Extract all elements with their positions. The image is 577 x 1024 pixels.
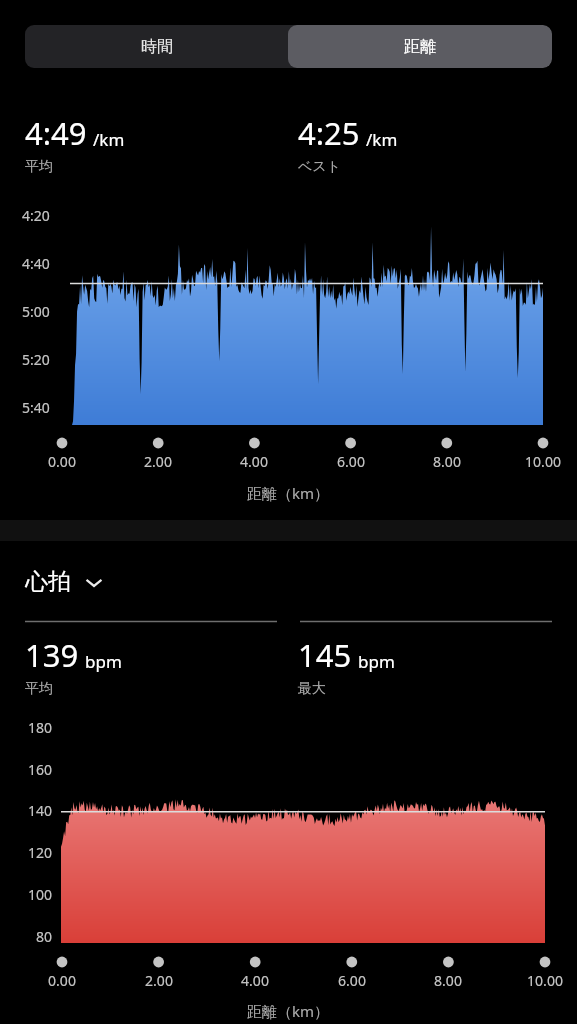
staticText: 心拍 [25,567,71,596]
staticText: 0.00 [48,452,76,471]
staticText: 0.00 [48,971,76,990]
staticText: 4:20 [22,206,50,225]
button[interactable]: 時間 [25,25,288,68]
staticText: 6.00 [338,971,366,990]
staticText: /km [93,128,125,151]
staticText: 4:49 [25,112,87,154]
staticText: 6.00 [337,452,365,471]
staticText: 時間 [141,37,173,57]
staticText: 8.00 [434,971,462,990]
staticText: 140 [27,801,52,820]
staticText: bpm [358,650,395,673]
staticText: 距離（km） [247,1001,330,1021]
staticText: 180 [27,718,52,737]
staticText: 8.00 [433,452,461,471]
staticText: 145 [298,634,352,676]
staticText: 160 [27,760,52,779]
staticText: 4:25 [298,112,360,154]
staticText: 2.00 [144,452,172,471]
staticText: bpm [85,650,122,673]
staticText: 4:40 [22,254,50,273]
staticText: 平均 [25,680,53,698]
button[interactable]: 心拍 [25,567,105,596]
staticText: 距離 [404,37,436,57]
button[interactable]: 距離 [288,25,552,68]
staticText: ベスト [298,158,341,176]
staticText: 最大 [298,680,326,698]
staticText: 10.00 [527,971,563,990]
staticText: 5:40 [22,398,50,417]
other: Expand heart rate [83,571,105,593]
staticText: 距離（km） [247,483,330,503]
staticText: 10.00 [525,452,561,471]
staticText: 4.00 [240,452,268,471]
staticText: 5:20 [22,350,50,369]
staticText: 4.00 [241,971,269,990]
staticText: /km [366,128,398,151]
staticText: 100 [27,885,52,904]
staticText: 80 [35,927,52,946]
staticText: 139 [25,634,79,676]
staticText: 平均 [25,158,53,176]
staticText: 5:00 [22,302,50,321]
staticText: 120 [27,843,52,862]
staticText: 2.00 [145,971,173,990]
